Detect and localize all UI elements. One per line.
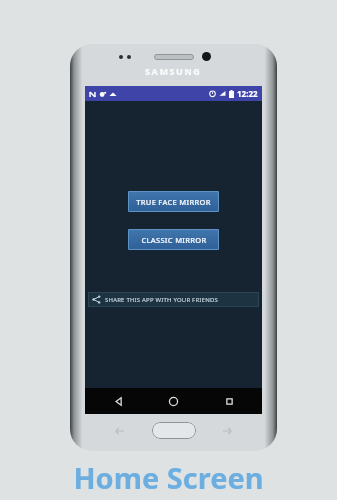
staticText: CLASSIC MIRROR bbox=[141, 235, 207, 245]
button[interactable]: Recent apps bbox=[207, 388, 252, 414]
staticText: SHARE THIS APP WITH YOUR FRIENDS bbox=[105, 296, 218, 304]
button[interactable]: CLASSIC MIRROR bbox=[128, 229, 219, 250]
staticText: TRUE FACE MIRROR bbox=[136, 197, 211, 207]
staticText: 12:22 bbox=[237, 88, 258, 99]
button[interactable]: Back bbox=[96, 388, 141, 414]
staticText: Home Screen bbox=[0, 458, 337, 497]
staticText: SAMSUNG bbox=[145, 65, 202, 77]
button[interactable]: SHARE THIS APP WITH YOUR FRIENDS bbox=[88, 292, 259, 307]
button[interactable]: TRUE FACE MIRROR bbox=[128, 191, 219, 212]
button[interactable]: Home bbox=[151, 388, 196, 414]
